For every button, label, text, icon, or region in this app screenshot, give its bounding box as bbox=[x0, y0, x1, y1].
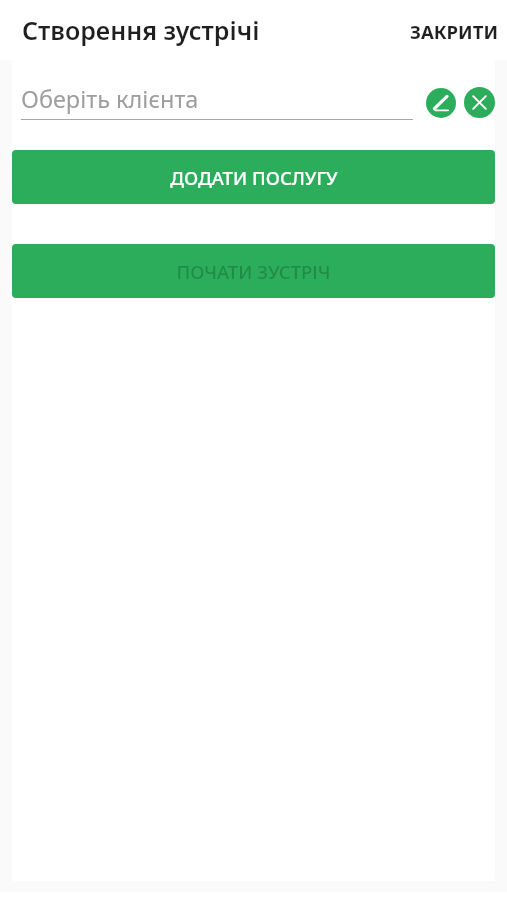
staticText: ПОЧАТИ ЗУСТРІЧ bbox=[176, 259, 331, 284]
staticText: Створення зустрічі bbox=[22, 13, 260, 47]
staticText: Оберіть клієнта bbox=[21, 83, 199, 115]
staticText: ДОДАТИ ПОСЛУГУ bbox=[170, 165, 338, 190]
button[interactable]: ДОДАТИ ПОСЛУГУ bbox=[12, 150, 495, 204]
staticText: ЗАКРИТИ bbox=[410, 19, 499, 44]
button[interactable]: ПОЧАТИ ЗУСТРІЧ bbox=[12, 244, 495, 298]
button[interactable]: ЗАКРИТИ bbox=[399, 11, 507, 52]
button[interactable]: Edit client bbox=[426, 88, 456, 118]
button[interactable]: Clear client bbox=[464, 87, 495, 118]
button[interactable]: Оберіть клієнта bbox=[21, 83, 413, 120]
